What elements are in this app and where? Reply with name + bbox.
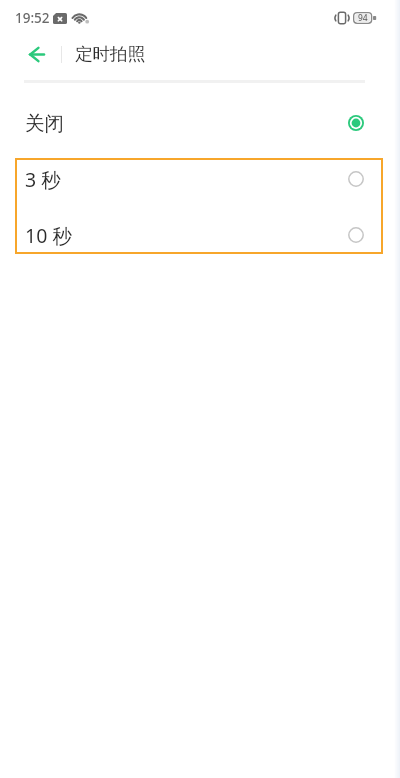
staticText: 3 秒 bbox=[25, 166, 61, 193]
staticText: 94 bbox=[358, 12, 368, 24]
button[interactable]: 3 秒 bbox=[0, 151, 400, 207]
staticText: 10 秒 bbox=[25, 222, 72, 249]
staticText: 关闭 bbox=[25, 111, 64, 136]
button[interactable]: Back bbox=[16, 32, 60, 76]
staticText: 定时拍照 bbox=[75, 43, 145, 65]
button[interactable]: 10 秒 bbox=[0, 207, 400, 263]
button[interactable]: 关闭 bbox=[0, 95, 400, 151]
staticText: 19:52 bbox=[15, 9, 50, 27]
